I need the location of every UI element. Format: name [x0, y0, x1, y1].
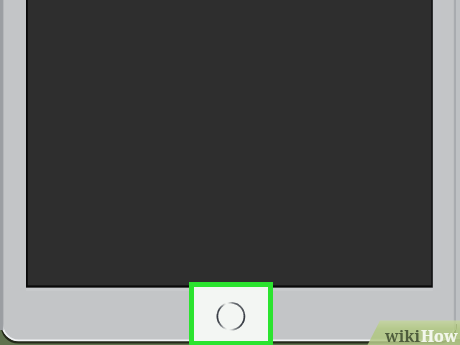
button[interactable]: Home button	[189, 282, 273, 345]
staticText: How	[421, 325, 458, 345]
staticText: wiki	[385, 325, 421, 345]
